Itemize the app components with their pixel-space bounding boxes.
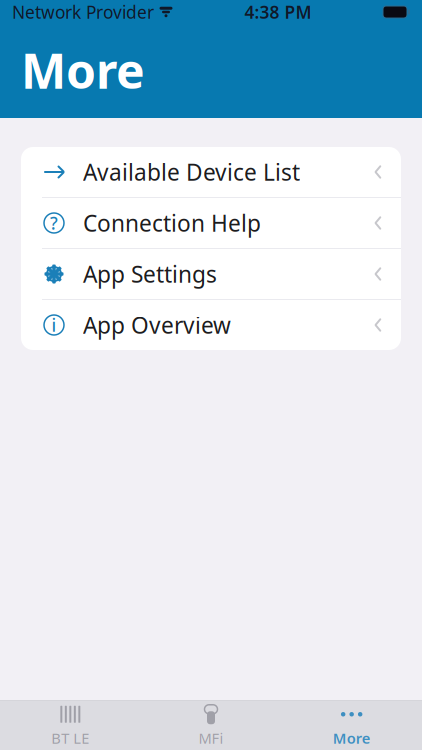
button[interactable]: More — [281, 701, 422, 750]
staticText: 4:38 PM — [244, 0, 311, 23]
staticText: BT LE — [51, 728, 89, 748]
staticText: App Settings — [83, 259, 217, 289]
button[interactable]: ? — [21, 198, 401, 249]
staticText: MFi — [198, 728, 223, 748]
button[interactable]: i — [21, 300, 401, 350]
staticText: More — [333, 728, 371, 748]
staticText: ? — [50, 211, 58, 234]
staticText: More — [21, 38, 145, 102]
button[interactable]: Available Device List — [21, 147, 401, 198]
staticText: Connection Help — [83, 208, 261, 238]
button[interactable]: BT LE — [0, 701, 141, 750]
staticText: App Overview — [83, 310, 231, 340]
button[interactable]: App Settings — [21, 249, 401, 300]
button[interactable]: MFi — [141, 701, 281, 750]
staticText: Available Device List — [83, 157, 300, 187]
staticText: Network Provider — [12, 0, 154, 23]
staticText: i — [51, 313, 56, 336]
